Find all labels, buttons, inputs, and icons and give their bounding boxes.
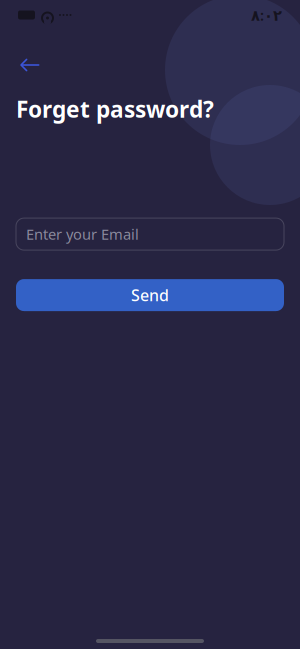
staticText: Send	[131, 284, 169, 306]
button[interactable]: Send	[0, 279, 300, 311]
button[interactable]: Back	[0, 50, 52, 80]
staticText: Enter your Email	[26, 224, 139, 244]
staticText: Forget password?	[16, 94, 214, 124]
staticText: ٨:٠٢	[251, 5, 282, 25]
button[interactable]: Enter your Email	[0, 218, 300, 250]
